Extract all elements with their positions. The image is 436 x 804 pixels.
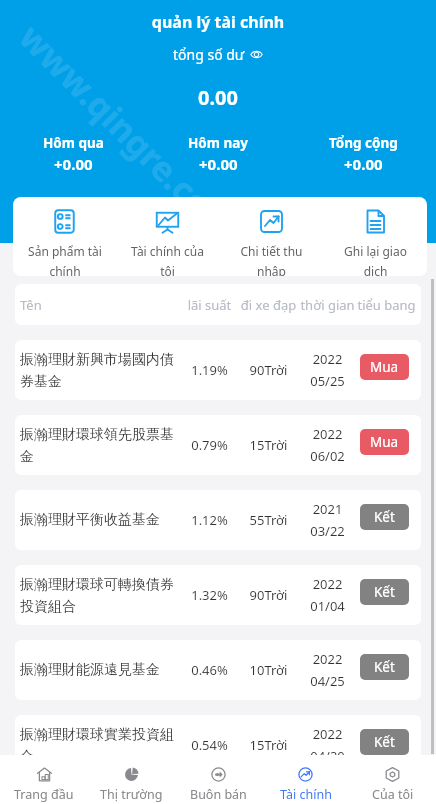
button[interactable]: 振瀚理財能源遠見基金 [15, 640, 421, 700]
staticText: 振瀚理財環球領先股票基金 [20, 426, 180, 465]
staticText: Hôm nay [188, 134, 249, 152]
staticText: Mua [370, 433, 399, 451]
staticText: 振瀚理財平衡收益基金 [20, 511, 180, 529]
staticText: Tài chính của tôi [131, 243, 204, 276]
staticText: 2022 06/02 [298, 425, 357, 465]
button[interactable]: Ghi lại giao dịch [323, 197, 427, 276]
staticText: 振瀚理財新興市場國内債券基金 [20, 351, 180, 390]
staticText: 90Trời [239, 586, 298, 604]
staticText: 2021 03/22 [298, 500, 357, 540]
button[interactable]: Tài chính của tôi [116, 197, 219, 276]
button[interactable]: Kết [360, 654, 409, 680]
staticText: 0.46% [180, 661, 239, 679]
button[interactable]: 振瀚理財平衡收益基金 [15, 490, 421, 550]
button[interactable]: Kết [360, 504, 409, 530]
staticText: +0.00 [199, 154, 238, 174]
staticText: Mua [370, 358, 399, 376]
staticText: Kết [374, 658, 395, 676]
staticText: Thị trường [100, 786, 163, 803]
staticText: quản lý tài chính [0, 11, 436, 33]
staticText: Buôn bán [190, 786, 247, 803]
staticText: Kết [374, 508, 395, 526]
staticText: Ghi lại giao dịch [344, 243, 407, 276]
staticText: Tên [20, 296, 180, 314]
button[interactable]: Kết [360, 729, 409, 755]
staticText: 2022 05/25 [298, 350, 357, 390]
button[interactable]: Của tôi [349, 756, 436, 803]
staticText: 1.32% [180, 586, 239, 604]
staticText: thời gian [298, 296, 357, 314]
staticText: Chi tiết thu nhập [240, 243, 303, 276]
staticText: 90Trời [239, 361, 298, 379]
staticText: 1.19% [180, 361, 239, 379]
staticText: 1.12% [180, 511, 239, 529]
staticText: Sản phẩm tài chính [28, 243, 102, 276]
staticText: Kết [374, 583, 395, 601]
staticText: 振瀚理財環球可轉換債券投資組合 [20, 576, 180, 615]
button[interactable]: Mua [360, 354, 409, 380]
staticText: Tài chính [280, 786, 332, 803]
button[interactable]: Kết [360, 579, 409, 605]
staticText: Tổng cộng [329, 134, 398, 152]
button[interactable]: Sản phẩm tài chính [13, 197, 116, 276]
button[interactable]: 振瀚理財環球領先股票基金 [15, 415, 421, 475]
staticText: 2022 01/04 [298, 575, 357, 615]
button[interactable]: Tài chính [262, 756, 349, 803]
staticText: 0.00 [0, 84, 436, 111]
staticText: 15Trời [239, 436, 298, 454]
staticText: Trang đầu [14, 786, 74, 803]
staticText: 2022 04/30 [298, 725, 357, 765]
button[interactable]: Mua [360, 429, 409, 455]
staticText: đi xe đạp [239, 296, 298, 314]
staticText: Hôm qua [43, 134, 104, 152]
button[interactable]: 振瀚理財新興市場國内債券基金 [15, 340, 421, 400]
staticText: +0.00 [54, 154, 93, 174]
staticText: 10Trời [239, 661, 298, 679]
button[interactable]: Chi tiết thu nhập [219, 197, 323, 276]
staticText: 振瀚理財環球實業投資組合 [20, 726, 180, 765]
button[interactable]: Trang đầu [0, 756, 88, 803]
button[interactable]: 振瀚理財環球可轉換債券投資組合 [15, 565, 421, 625]
staticText: lãi suất [180, 296, 239, 314]
staticText: tiểu bang [357, 296, 416, 314]
staticText: Kết [374, 733, 395, 751]
staticText: 55Trời [239, 511, 298, 529]
staticText: tổng số dư [173, 45, 245, 64]
button[interactable]: Buôn bán [175, 756, 262, 803]
staticText: 振瀚理財能源遠見基金 [20, 661, 180, 679]
staticText: 0.54% [180, 736, 239, 754]
button[interactable]: Thị trường [88, 756, 175, 803]
staticText: 2022 04/25 [298, 650, 357, 690]
staticText: +0.00 [344, 154, 383, 174]
staticText: 15Trời [239, 736, 298, 754]
staticText: 0.79% [180, 436, 239, 454]
button[interactable]: Hiện số dư [250, 48, 263, 61]
staticText: Của tôi [372, 786, 414, 803]
button[interactable]: 振瀚理財環球實業投資組合 [15, 715, 421, 775]
